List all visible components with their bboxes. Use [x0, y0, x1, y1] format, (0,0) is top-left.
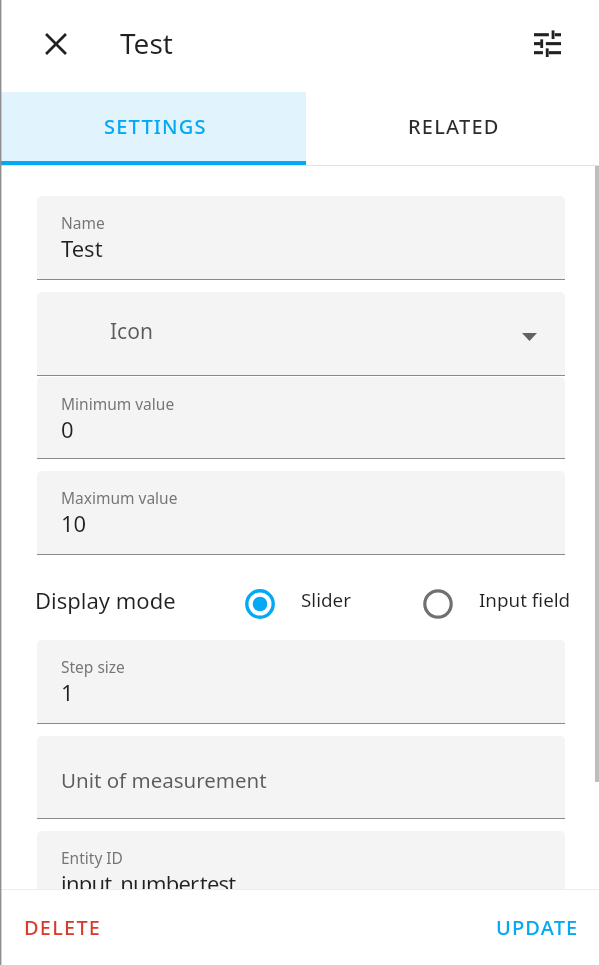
button[interactable]: Icon [37, 292, 565, 375]
staticText: DELETE [24, 914, 102, 941]
staticText: SETTINGS [104, 113, 207, 140]
button[interactable]: Close [32, 20, 80, 68]
button[interactable]: UPDATE [480, 902, 595, 953]
staticText: Unit of measurement [61, 766, 267, 794]
button[interactable]: Entity ID [37, 831, 565, 889]
staticText: RELATED [408, 113, 500, 140]
staticText: Maximum value [61, 487, 178, 508]
button[interactable]: Minimum value [37, 377, 565, 458]
button[interactable]: SETTINGS [0, 92, 306, 165]
button[interactable]: RELATED [306, 92, 599, 165]
staticText: Test [61, 233, 103, 263]
button[interactable]: Slider [245, 573, 395, 621]
button[interactable]: Name [37, 196, 565, 279]
staticText: Test [120, 24, 173, 62]
staticText: Name [61, 212, 105, 233]
button[interactable]: Step size [37, 640, 565, 723]
staticText: Input field [479, 587, 571, 613]
staticText: 1 [61, 677, 74, 707]
staticText: 0 [61, 414, 74, 444]
button[interactable]: Input field [423, 573, 599, 621]
staticText: Slider [301, 587, 351, 613]
button[interactable]: Unit of measurement [37, 736, 565, 818]
staticText: Entity ID [61, 847, 123, 868]
button[interactable]: Settings [523, 19, 571, 67]
staticText: Icon [110, 317, 153, 346]
staticText: Step size [61, 656, 125, 677]
staticText: Minimum value [61, 393, 175, 414]
staticText: Display mode [35, 585, 176, 615]
staticText: 10 [61, 508, 87, 538]
staticText: input_number.test [61, 868, 236, 889]
button[interactable]: DELETE [8, 902, 118, 953]
staticText: UPDATE [496, 914, 579, 941]
button[interactable]: Maximum value [37, 471, 565, 554]
